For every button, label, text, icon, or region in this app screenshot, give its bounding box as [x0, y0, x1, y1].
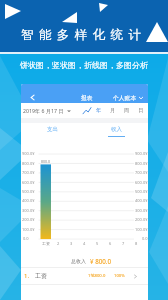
- button[interactable]: 1.: [21, 268, 148, 284]
- staticText: ¥ 800.0: [90, 257, 111, 265]
- button[interactable]: 收入: [84, 123, 148, 140]
- staticText: 500.0¥: [22, 189, 35, 194]
- staticText: 智能多样化统计: [21, 27, 147, 43]
- staticText: 周: [124, 107, 130, 114]
- staticText: 个人账本: [113, 94, 137, 101]
- staticText: 收入: [111, 126, 122, 133]
- staticText: 800.0¥: [135, 161, 148, 166]
- button[interactable]: 个人账本: [113, 94, 143, 101]
- staticText: 4: [83, 241, 86, 246]
- staticText: 1笔800.0: [88, 273, 106, 279]
- button[interactable]: 日: [134, 103, 148, 118]
- staticText: 3: [70, 241, 73, 246]
- staticText: 700.0¥: [22, 170, 35, 175]
- staticText: 500.0¥: [135, 189, 148, 194]
- staticText: 7: [122, 241, 125, 246]
- staticText: 600.0¥: [22, 180, 35, 185]
- staticText: 800.0¥: [22, 161, 35, 166]
- button[interactable]: 支出: [21, 123, 84, 140]
- staticText: 900.0¥: [22, 151, 35, 156]
- staticText: 1.: [24, 272, 30, 280]
- staticText: 300.0¥: [22, 208, 35, 213]
- staticText: 100.0¥: [135, 227, 148, 232]
- staticText: 400.0¥: [135, 198, 148, 203]
- staticText: 600.0¥: [135, 180, 148, 185]
- staticText: 工资: [35, 272, 47, 280]
- staticText: 支出: [47, 126, 58, 133]
- staticText: 700.0¥: [135, 170, 148, 175]
- button[interactable]: 周: [120, 103, 134, 118]
- staticText: 400.0¥: [22, 198, 35, 203]
- staticText: 800.0: [41, 159, 50, 164]
- staticText: 100.0¥: [22, 227, 35, 232]
- button[interactable]: Line chart: [82, 106, 92, 116]
- button[interactable]: Back: [29, 94, 36, 101]
- staticText: 8: [135, 241, 138, 246]
- staticText: 工资: [42, 241, 50, 246]
- staticText: 总收入: [71, 258, 86, 264]
- button[interactable]: 2019年 6 月17 日: [23, 107, 71, 114]
- staticText: 200.0¥: [22, 217, 35, 222]
- button[interactable]: 月: [106, 103, 120, 118]
- staticText: 200.0¥: [135, 217, 148, 222]
- staticText: 0.0: [142, 236, 148, 241]
- staticText: 饼状图，竖状图，折线图，多图分析: [0, 60, 168, 70]
- staticText: 2: [57, 241, 60, 246]
- staticText: 0.0: [23, 236, 29, 241]
- staticText: 300.0¥: [135, 208, 148, 213]
- button[interactable]: 年: [92, 103, 106, 118]
- staticText: 900.0¥: [135, 151, 148, 156]
- staticText: 100%: [114, 273, 125, 279]
- staticText: 6: [109, 241, 112, 246]
- staticText: 月: [110, 107, 116, 114]
- staticText: 5: [96, 241, 99, 246]
- staticText: 日: [138, 107, 144, 114]
- staticText: 2019年 6 月17 日: [23, 107, 64, 114]
- staticText: 年: [96, 107, 102, 114]
- staticText: 报表: [81, 94, 93, 101]
